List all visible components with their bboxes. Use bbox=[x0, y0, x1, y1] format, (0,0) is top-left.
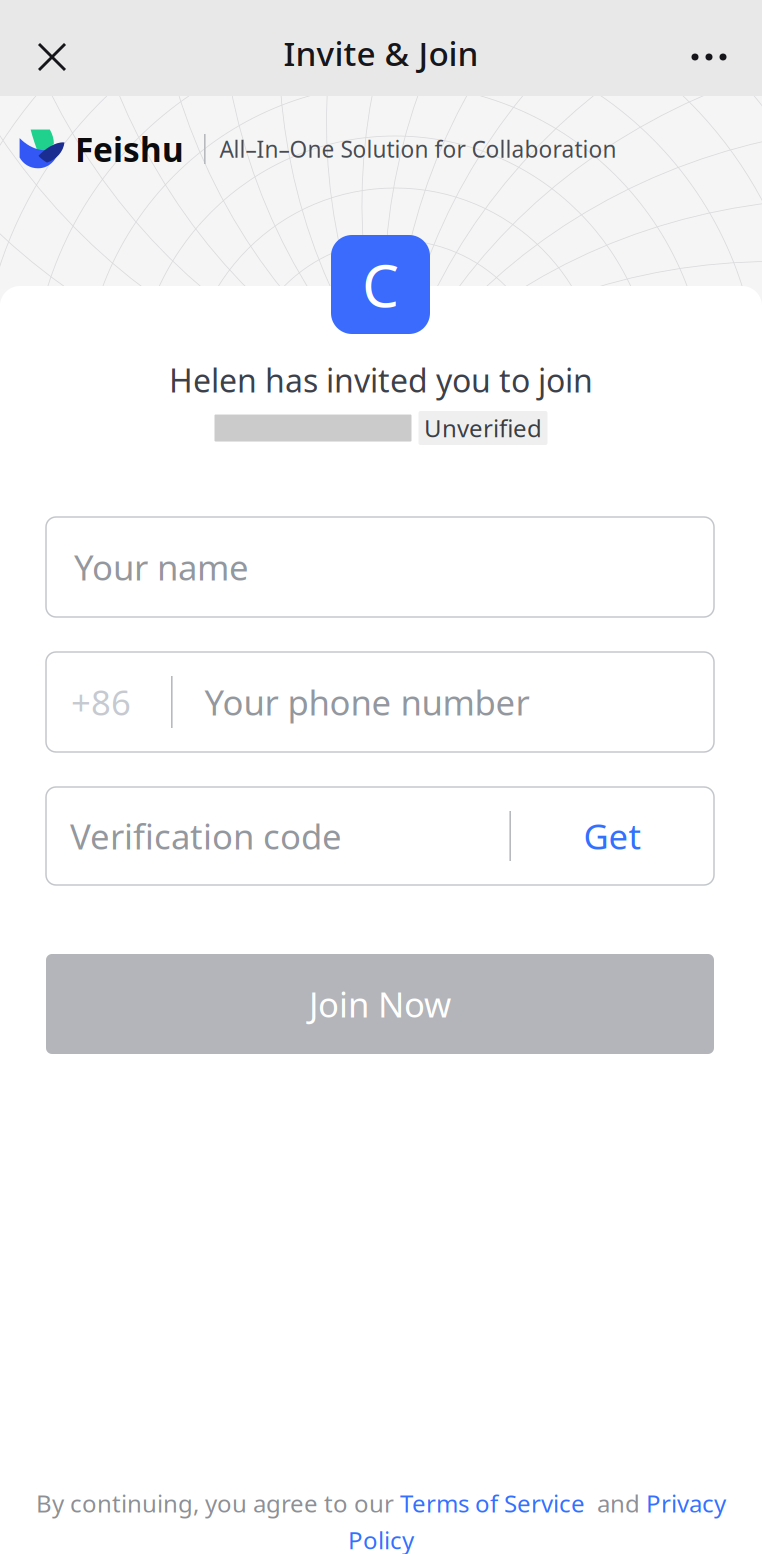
staticText: Your phone number bbox=[205, 679, 530, 725]
staticText: Policy bbox=[348, 1524, 414, 1554]
staticText: Invite & Join bbox=[283, 31, 478, 75]
button[interactable]: Privacy bbox=[646, 1487, 726, 1519]
button[interactable]: Get bbox=[511, 787, 714, 885]
staticText: Verification code bbox=[70, 813, 342, 859]
staticText: Your name bbox=[74, 544, 249, 590]
staticText: +86 bbox=[71, 679, 131, 725]
staticText: Join Now bbox=[309, 981, 451, 1027]
button[interactable]: Terms of Service bbox=[400, 1487, 585, 1519]
button[interactable]: Policy bbox=[348, 1524, 414, 1554]
staticText: By continuing, you agree to our bbox=[36, 1487, 400, 1519]
staticText: All–In–One Solution for Collaboration bbox=[220, 134, 617, 164]
staticText: Privacy bbox=[646, 1487, 726, 1519]
staticText: Get bbox=[583, 813, 641, 859]
staticText: Unverified bbox=[424, 412, 542, 444]
button[interactable]: Join Now bbox=[46, 954, 714, 1054]
staticText: Terms of Service bbox=[400, 1487, 585, 1519]
staticText: and bbox=[585, 1487, 646, 1519]
staticText: Helen has invited you to join bbox=[169, 359, 593, 401]
button[interactable]: More options bbox=[669, 13, 749, 101]
staticText: Feishu bbox=[75, 127, 184, 171]
staticText: C bbox=[362, 245, 399, 323]
button[interactable]: Close bbox=[8, 13, 96, 101]
